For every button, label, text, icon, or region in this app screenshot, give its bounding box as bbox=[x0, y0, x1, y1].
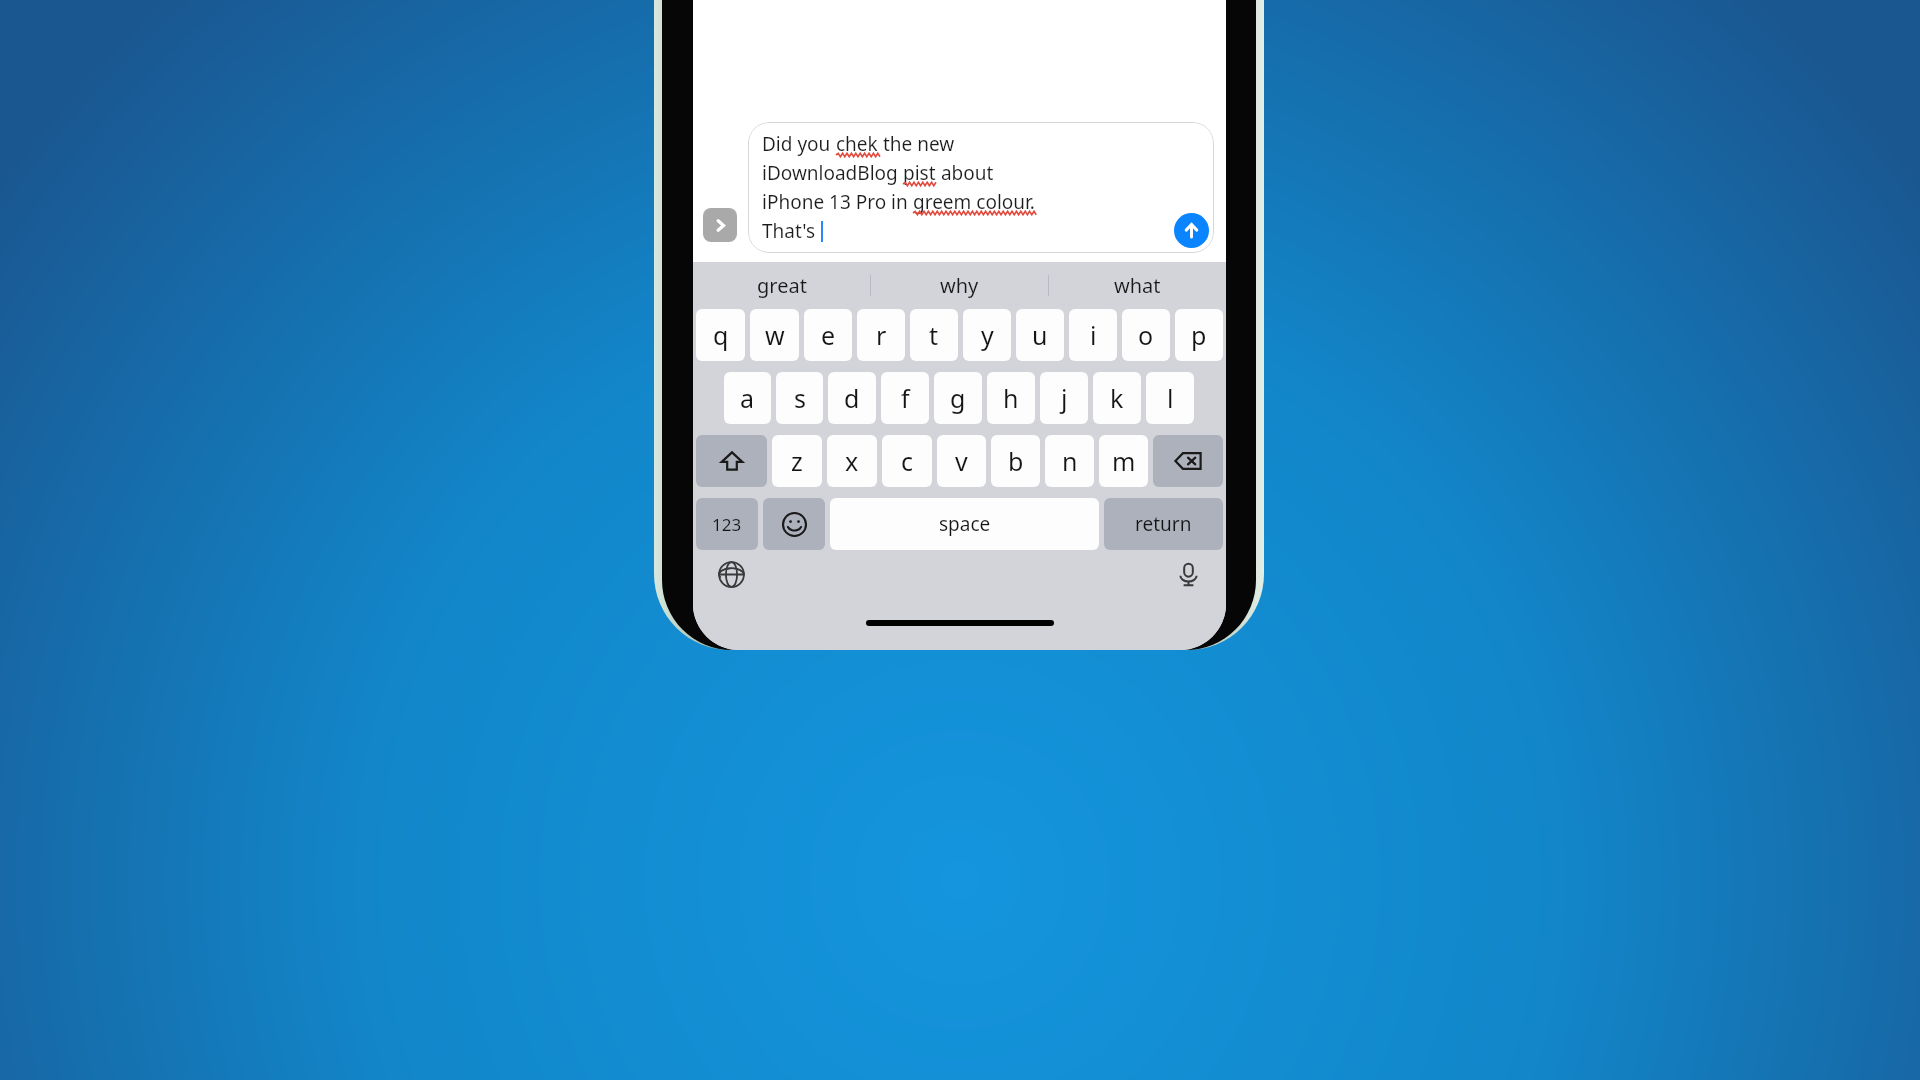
staticText: pist bbox=[903, 160, 936, 186]
staticText: o bbox=[1138, 318, 1154, 352]
staticText: space bbox=[939, 511, 991, 537]
staticText: iDownloadBlog bbox=[762, 160, 903, 186]
button[interactable]: g bbox=[934, 372, 982, 424]
button[interactable]: d bbox=[828, 372, 876, 424]
staticText: a bbox=[740, 381, 755, 415]
button[interactable]: m bbox=[1099, 435, 1148, 487]
button[interactable]: v bbox=[937, 435, 986, 487]
button[interactable]: return bbox=[1104, 498, 1223, 550]
button[interactable]: r bbox=[857, 309, 905, 361]
staticText: b bbox=[1008, 444, 1024, 478]
staticText: y bbox=[981, 318, 994, 352]
button[interactable]: i bbox=[1069, 309, 1117, 361]
staticText: greem colour. bbox=[913, 189, 1035, 215]
staticText: h bbox=[1003, 381, 1019, 415]
button[interactable]: n bbox=[1045, 435, 1094, 487]
button[interactable]: u bbox=[1016, 309, 1064, 361]
staticText: That's bbox=[762, 218, 816, 244]
staticText: d bbox=[844, 381, 860, 415]
button[interactable]: Dictation bbox=[1172, 558, 1204, 590]
button[interactable]: Backspace bbox=[1153, 435, 1223, 487]
staticText: w bbox=[765, 318, 785, 352]
staticText: g bbox=[950, 381, 966, 415]
button[interactable]: y bbox=[963, 309, 1011, 361]
staticText: t bbox=[929, 318, 939, 352]
button[interactable]: space bbox=[830, 498, 1099, 550]
button[interactable]: Shift bbox=[696, 435, 767, 487]
button[interactable]: x bbox=[827, 435, 877, 487]
button[interactable]: l bbox=[1146, 372, 1194, 424]
staticText: p bbox=[1191, 318, 1207, 352]
button[interactable]: Emoji bbox=[763, 498, 825, 550]
button[interactable]: c bbox=[882, 435, 932, 487]
staticText: i bbox=[1090, 318, 1097, 352]
button[interactable]: 123 bbox=[696, 498, 758, 550]
staticText: iPhone 13 Pro in bbox=[762, 189, 913, 215]
staticText: e bbox=[821, 318, 836, 352]
button[interactable]: a bbox=[724, 372, 771, 424]
button[interactable]: p bbox=[1175, 309, 1223, 361]
button[interactable]: f bbox=[881, 372, 929, 424]
staticText: return bbox=[1135, 511, 1192, 537]
staticText: j bbox=[1061, 381, 1068, 415]
button[interactable]: h bbox=[987, 372, 1035, 424]
button[interactable]: k bbox=[1093, 372, 1141, 424]
staticText: r bbox=[876, 318, 887, 352]
button[interactable]: e bbox=[804, 309, 852, 361]
staticText: u bbox=[1032, 318, 1048, 352]
staticText: chek bbox=[836, 131, 878, 157]
button[interactable]: z bbox=[772, 435, 822, 487]
staticText: Did you bbox=[762, 131, 836, 157]
button[interactable]: w bbox=[750, 309, 799, 361]
button[interactable]: great bbox=[693, 262, 870, 309]
button[interactable]: More apps bbox=[703, 208, 737, 242]
button[interactable]: q bbox=[696, 309, 745, 361]
button[interactable]: why bbox=[871, 262, 1048, 309]
staticText: f bbox=[901, 381, 910, 415]
button[interactable]: s bbox=[776, 372, 823, 424]
button[interactable]: Change keyboard bbox=[715, 558, 747, 590]
staticText: v bbox=[955, 444, 968, 478]
button[interactable]: o bbox=[1122, 309, 1170, 361]
staticText: s bbox=[794, 381, 806, 415]
staticText: why bbox=[940, 272, 979, 299]
button[interactable]: what bbox=[1049, 262, 1226, 309]
button[interactable]: Send bbox=[1174, 213, 1209, 248]
button[interactable]: Did you bbox=[748, 122, 1214, 253]
staticText: x bbox=[845, 444, 859, 478]
staticText: about bbox=[936, 160, 994, 186]
button[interactable]: t bbox=[910, 309, 958, 361]
staticText: the new bbox=[878, 131, 955, 157]
staticText: what bbox=[1114, 272, 1161, 299]
staticText: c bbox=[901, 444, 914, 478]
staticText: m bbox=[1112, 444, 1136, 478]
staticText: 123 bbox=[712, 513, 742, 536]
staticText: z bbox=[791, 444, 803, 478]
staticText: great bbox=[757, 272, 807, 299]
staticText: n bbox=[1062, 444, 1078, 478]
button[interactable]: b bbox=[991, 435, 1040, 487]
staticText: l bbox=[1167, 381, 1174, 415]
staticText: k bbox=[1110, 381, 1124, 415]
button[interactable]: j bbox=[1040, 372, 1088, 424]
staticText: q bbox=[713, 318, 729, 352]
